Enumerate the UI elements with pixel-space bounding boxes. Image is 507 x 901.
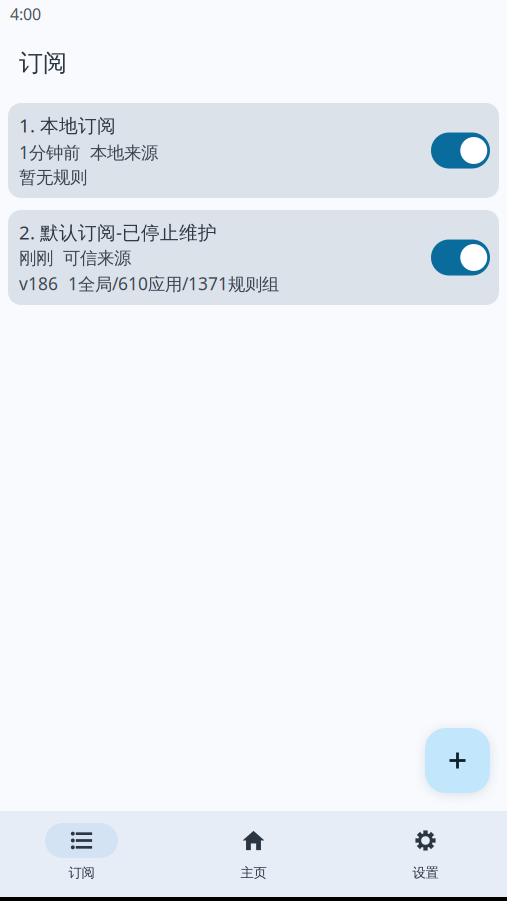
button[interactable]: 设置 [344, 811, 507, 897]
button[interactable]: 添加订阅 [425, 728, 490, 793]
staticText: 2. 默认订阅-已停止维护 [19, 220, 217, 245]
staticText: 刚刚 可信来源 [19, 248, 131, 269]
staticText: 订阅 [68, 865, 94, 881]
staticText: 4:00 [10, 3, 41, 25]
staticText: 1. 本地订阅 [19, 113, 116, 138]
button[interactable]: 1. 本地订阅 [8, 103, 499, 198]
staticText: v186 1全局/610应用/1371规则组 [19, 272, 279, 295]
button[interactable]: 订阅 [0, 811, 163, 897]
staticText: 订阅 [19, 48, 67, 78]
button[interactable]: 主页 [163, 811, 344, 897]
staticText: 暂无规则 [19, 167, 87, 188]
staticText: 设置 [412, 865, 438, 881]
staticText: 1分钟前 本地来源 [19, 141, 158, 164]
staticText: 主页 [240, 865, 266, 881]
button[interactable]: 2. 默认订阅-已停止维护 [8, 210, 499, 305]
